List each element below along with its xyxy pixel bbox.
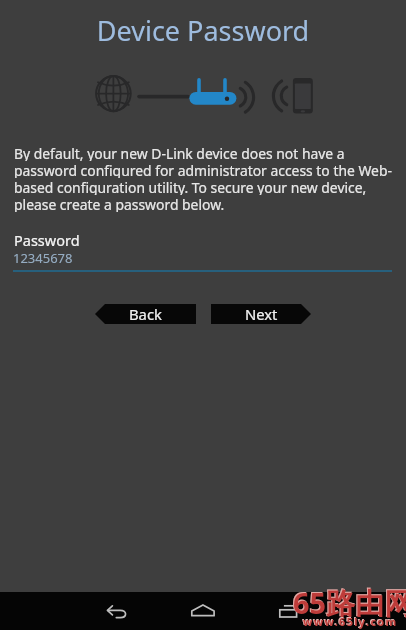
staticText: Next (245, 304, 278, 324)
staticText: 12345678 (13, 249, 73, 267)
staticText: please create a password below. (14, 195, 225, 212)
button[interactable]: Recent apps (255, 592, 315, 630)
staticText: www.65ly.com (302, 613, 397, 628)
staticText: Device Password (0, 12, 406, 49)
staticText: based configuration utility. To secure y… (14, 178, 367, 195)
button[interactable]: Home (173, 592, 233, 630)
button[interactable]: Back (88, 592, 148, 630)
staticText: Back (129, 304, 162, 324)
staticText: password configured for administrator ac… (14, 161, 392, 178)
staticText: Password (14, 230, 80, 250)
button[interactable]: Next (211, 304, 311, 324)
button[interactable]: 12345678 (13, 246, 392, 272)
button[interactable]: Back (95, 304, 196, 324)
staticText: 65路由网 (292, 582, 406, 622)
staticText: By default, your new D-Link device does … (14, 144, 345, 161)
staticText: www.65ly.com (303, 614, 398, 629)
staticText: 65路由网 (293, 583, 406, 623)
